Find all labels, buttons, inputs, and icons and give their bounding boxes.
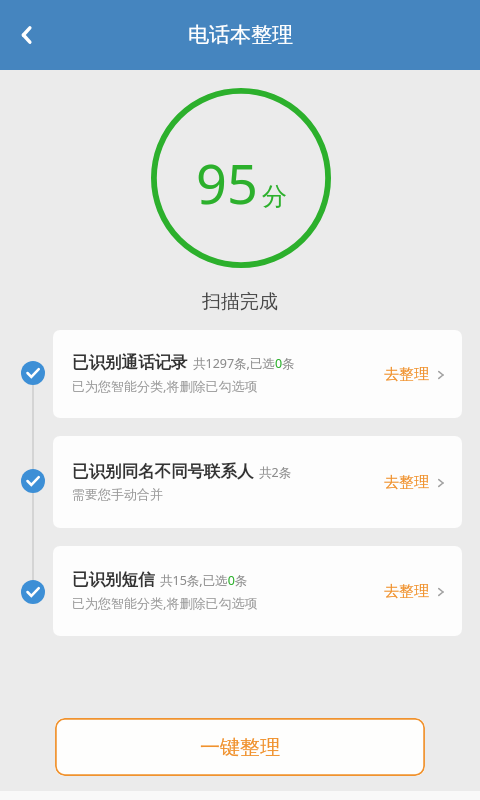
staticText: 共15条,已选0条 bbox=[160, 572, 248, 589]
staticText: 已为您智能分类,将删除已勾选项 bbox=[72, 594, 258, 612]
staticText: 分 bbox=[262, 181, 287, 212]
staticText: 一键整理 bbox=[200, 735, 280, 760]
button[interactable]: 一键整理 bbox=[55, 718, 425, 776]
button[interactable]: 已识别短信 bbox=[53, 546, 462, 636]
staticText: 已识别同名不同号联系人 bbox=[72, 461, 254, 482]
button[interactable]: 去整理 bbox=[384, 473, 446, 492]
staticText: 电话本整理 bbox=[188, 22, 293, 48]
staticText: 需要您手动合并 bbox=[72, 486, 163, 502]
staticText: 已识别通话记录 bbox=[72, 352, 188, 373]
staticText: 去整理 bbox=[384, 473, 429, 492]
staticText: 去整理 bbox=[384, 365, 429, 384]
button[interactable]: 已识别通话记录 bbox=[53, 330, 462, 418]
staticText: 扫描完成 bbox=[0, 290, 480, 314]
button[interactable]: 去整理 bbox=[384, 582, 446, 601]
staticText: 共2条 bbox=[259, 464, 292, 481]
button[interactable]: Back bbox=[2, 10, 52, 60]
staticText: 已为您智能分类,将删除已勾选项 bbox=[72, 377, 258, 395]
button[interactable]: 已识别同名不同号联系人 bbox=[53, 436, 462, 528]
button[interactable]: 去整理 bbox=[384, 365, 446, 384]
staticText: 去整理 bbox=[384, 582, 429, 601]
staticText: 共1297条,已选0条 bbox=[193, 355, 295, 372]
staticText: 95 bbox=[196, 146, 258, 220]
staticText: 已识别短信 bbox=[72, 569, 155, 590]
